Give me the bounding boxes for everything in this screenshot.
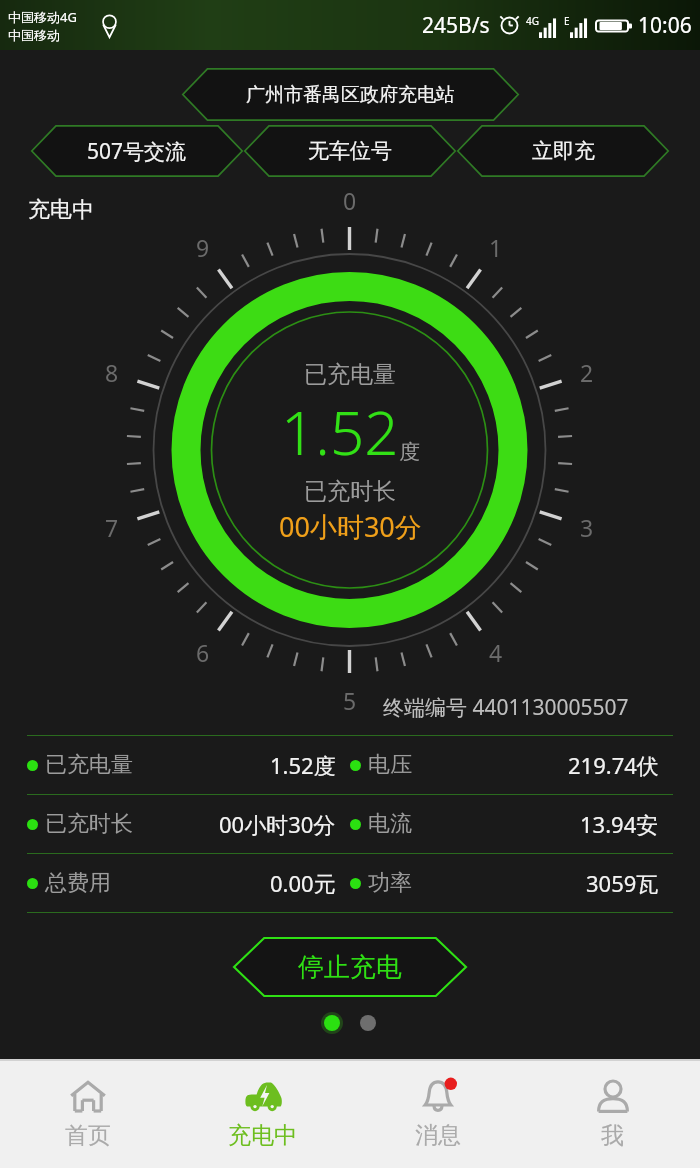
staticText: 4G (526, 14, 539, 28)
staticText: 3059瓦 (586, 868, 659, 898)
staticText: 终端编号 4401130005507 (383, 693, 629, 722)
button[interactable] (321, 1012, 343, 1034)
staticText: 电流 (368, 810, 412, 838)
staticText: 消息 (415, 1121, 461, 1150)
staticText: 6 (196, 637, 210, 668)
staticText: 245B/s (422, 11, 490, 40)
staticText: 5 (343, 685, 357, 716)
button[interactable]: 消息 (350, 1059, 525, 1168)
staticText: 已充时长 (304, 477, 396, 506)
staticText: 8 (105, 357, 119, 388)
button[interactable]: 无车位号 (244, 125, 456, 177)
staticText: E (564, 14, 570, 28)
staticText: 充电中 (228, 1121, 297, 1150)
button[interactable]: 已充时长 (27, 795, 350, 853)
staticText: 0 (343, 185, 357, 216)
staticText: 停止充电 (298, 951, 402, 984)
staticText: 已充电量 (45, 751, 133, 779)
staticText: 功率 (368, 869, 412, 897)
button[interactable]: 功率 (350, 854, 673, 912)
staticText: 2 (580, 357, 594, 388)
staticText: 7 (105, 512, 119, 543)
button[interactable] (357, 1012, 379, 1034)
button[interactable]: 我 (525, 1059, 700, 1168)
staticText: 无车位号 (308, 138, 392, 164)
button[interactable]: 507号交流 (31, 125, 243, 177)
staticText: 度 (399, 439, 420, 465)
button[interactable]: 已充电量 (27, 736, 350, 794)
staticText: 电压 (368, 751, 412, 779)
button[interactable]: 首页 (0, 1059, 175, 1168)
staticText: 10:06 (638, 11, 692, 40)
button[interactable]: 停止充电 (233, 937, 467, 997)
staticText: 首页 (65, 1121, 111, 1150)
staticText: 00小时30分 (279, 508, 422, 545)
staticText: 1.52 (281, 391, 399, 473)
button[interactable]: 立即充 (457, 125, 669, 177)
staticText: 广州市番禺区政府充电站 (246, 83, 455, 107)
staticText: 充电中 (28, 196, 94, 224)
staticText: 1 (489, 232, 503, 263)
staticText: 4 (489, 637, 503, 668)
staticText: 我 (601, 1121, 624, 1150)
staticText: 9 (196, 232, 210, 263)
staticText: 中国移动 (8, 27, 60, 43)
staticText: 13.94安 (580, 809, 659, 839)
staticText: 中国移动4G (8, 8, 77, 26)
button[interactable]: 电压 (350, 736, 673, 794)
staticText: 3 (580, 512, 594, 543)
staticText: 219.74伏 (568, 750, 659, 780)
button[interactable]: 总费用 (27, 854, 350, 912)
staticText: 已充电量 (304, 360, 396, 389)
staticText: 00小时30分 (219, 809, 336, 839)
staticText: 总费用 (45, 869, 111, 897)
staticText: 507号交流 (87, 137, 187, 166)
button[interactable]: 充电中 (175, 1059, 350, 1168)
button[interactable]: 广州市番禺区政府充电站 (182, 68, 519, 121)
staticText: 1.52度 (270, 750, 336, 780)
button[interactable]: 电流 (350, 795, 673, 853)
staticText: 已充时长 (45, 810, 133, 838)
staticText: 0.00元 (270, 868, 336, 898)
staticText: 立即充 (532, 138, 595, 164)
